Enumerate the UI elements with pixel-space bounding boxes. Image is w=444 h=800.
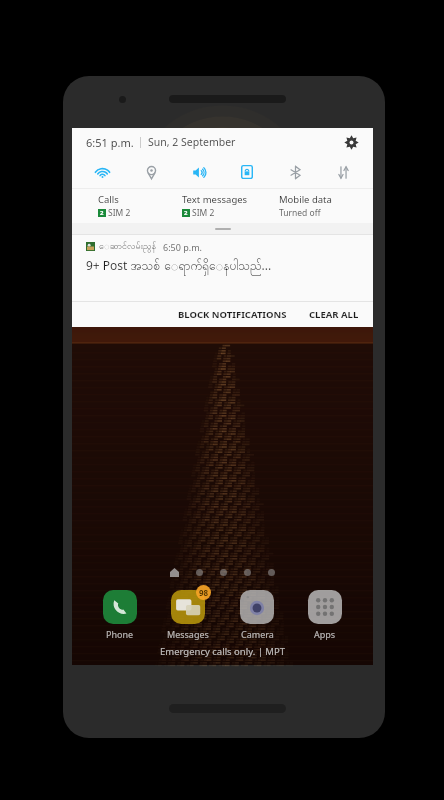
staticText: 98 [199, 587, 209, 598]
button[interactable]: Calls [98, 193, 182, 219]
staticText: CLEAR ALL [309, 308, 359, 321]
button[interactable]: Screen lock [223, 156, 271, 188]
staticText: Calls [98, 193, 119, 206]
button[interactable]: Bluetooth [271, 156, 319, 188]
staticText: BLOCK NOTIFICATIONS [178, 308, 287, 321]
staticText: Emergency calls only. | MPT [72, 645, 373, 658]
staticText: 2 [100, 209, 104, 217]
button[interactable]: Mobile data [319, 156, 367, 188]
button[interactable]: Wi-Fi [78, 156, 127, 188]
staticText: 2 [184, 209, 188, 217]
staticText: 6:51 p.m. [86, 135, 134, 150]
staticText: 9+ Post အသစ် ေရာက်ရှိေနပါသည်... [86, 257, 272, 276]
button[interactable]: CLEAR ALL [301, 302, 373, 327]
staticText: Messages [167, 628, 209, 640]
staticText: Turned off [279, 207, 321, 219]
staticText: Sun, 2 September [148, 135, 236, 149]
button[interactable]: 98 [157, 587, 219, 641]
staticText: Camera [241, 628, 274, 640]
button[interactable]: Location [127, 156, 175, 188]
staticText: Mobile data [279, 193, 332, 206]
button[interactable]: Mobile data [279, 193, 359, 219]
staticText: Apps [314, 628, 336, 640]
button[interactable]: BLOCK NOTIFICATIONS [170, 302, 295, 327]
staticText: SIM 2 [192, 207, 215, 219]
staticText: Text messages [182, 193, 248, 206]
staticText: 6:50 p.m. [163, 241, 202, 253]
staticText: ေဆာင်လမ်းညွန် [99, 240, 157, 253]
button[interactable]: Camera [226, 587, 288, 641]
staticText: Phone [106, 628, 134, 640]
button[interactable]: Settings [339, 130, 363, 154]
button[interactable]: Text messages [182, 193, 279, 219]
button[interactable]: Phone [89, 587, 151, 641]
staticText: SIM 2 [108, 207, 131, 219]
button[interactable]: Apps [294, 587, 356, 641]
button[interactable]: ေဆာင်လမ်းညွန် [72, 235, 373, 301]
button[interactable]: Sound [175, 156, 223, 188]
